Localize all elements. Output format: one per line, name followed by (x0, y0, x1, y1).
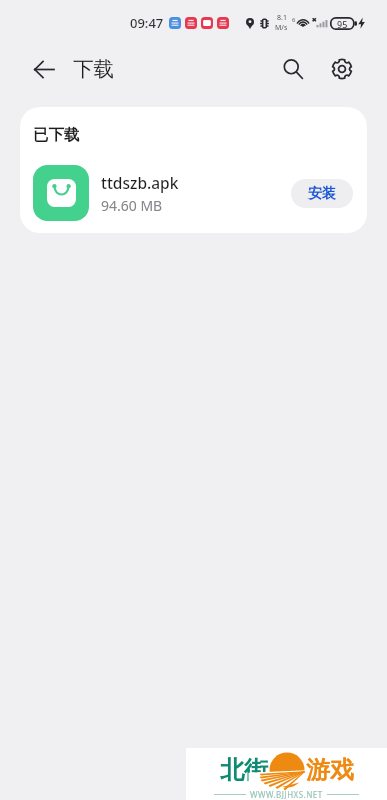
button[interactable]: Back (26, 51, 62, 87)
staticText: 95 (337, 18, 348, 30)
staticText: 下载 (73, 56, 114, 82)
button[interactable]: Settings (323, 50, 361, 88)
staticText: 已下载 (33, 125, 80, 145)
staticText: 游戏 (306, 755, 354, 785)
button[interactable]: ttdszb.apk (20, 150, 367, 224)
button[interactable]: Search (274, 50, 312, 88)
staticText: 北街 (220, 755, 268, 785)
staticText: 94.60 MB (101, 196, 163, 215)
staticText: ttdszb.apk (101, 172, 179, 193)
button[interactable]: 安装 (291, 179, 353, 208)
staticText: 6 (292, 16, 296, 24)
staticText: 安装 (308, 185, 336, 203)
staticText: WWW.BJJHXS.NET (250, 789, 323, 800)
staticText: 09:47 (130, 14, 164, 32)
staticText: 8.1 (277, 13, 287, 23)
staticText: M/s (275, 23, 288, 33)
